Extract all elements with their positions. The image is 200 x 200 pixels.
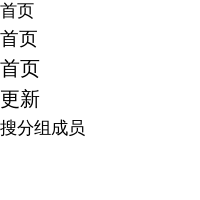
- staticText: 更新: [0, 87, 40, 111]
- staticText: 首页: [0, 27, 38, 50]
- staticText: 首页: [0, 0, 34, 21]
- staticText: 搜分组成员: [0, 117, 85, 139]
- staticText: 首页: [0, 56, 40, 81]
